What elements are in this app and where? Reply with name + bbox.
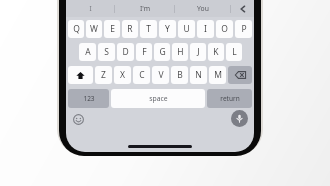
staticText: I: [204, 23, 207, 35]
button[interactable]: G: [154, 43, 170, 61]
staticText: K: [213, 46, 219, 58]
staticText: F: [142, 46, 147, 58]
button[interactable]: Q: [68, 20, 84, 38]
button[interactable]: Shift: [68, 66, 93, 84]
staticText: You: [197, 4, 209, 13]
button[interactable]: M: [209, 66, 226, 84]
button[interactable]: V: [152, 66, 169, 84]
staticText: X: [120, 69, 125, 81]
button[interactable]: return: [207, 89, 252, 108]
button[interactable]: Collapse predictions: [231, 0, 254, 17]
button[interactable]: Z: [95, 66, 112, 84]
staticText: return: [220, 94, 240, 103]
button[interactable]: C: [133, 66, 150, 84]
button[interactable]: J: [190, 43, 206, 61]
staticText: O: [221, 23, 228, 35]
button[interactable]: O: [216, 20, 233, 38]
button[interactable]: W: [86, 20, 102, 38]
button[interactable]: 123: [68, 89, 109, 108]
button[interactable]: I: [66, 0, 114, 17]
button[interactable]: I'm: [115, 0, 174, 17]
staticText: C: [139, 69, 145, 81]
button[interactable]: T: [140, 20, 157, 38]
staticText: P: [241, 23, 247, 35]
button[interactable]: N: [190, 66, 207, 84]
staticText: R: [127, 23, 133, 35]
button[interactable]: I: [197, 20, 214, 38]
staticText: Y: [165, 23, 170, 35]
button[interactable]: R: [122, 20, 138, 38]
staticText: E: [110, 23, 115, 35]
button[interactable]: D: [117, 43, 134, 61]
button[interactable]: S: [98, 43, 115, 61]
staticText: I'm: [140, 4, 150, 13]
staticText: J: [197, 46, 200, 58]
staticText: M: [214, 69, 222, 81]
button[interactable]: space: [111, 89, 205, 108]
staticText: L: [232, 46, 237, 58]
staticText: B: [177, 69, 183, 81]
staticText: G: [159, 46, 166, 58]
staticText: D: [122, 46, 129, 58]
staticText: Q: [73, 23, 80, 35]
button[interactable]: Emoji: [71, 112, 85, 126]
button[interactable]: Delete: [228, 66, 252, 84]
staticText: T: [146, 23, 151, 35]
button[interactable]: B: [171, 66, 188, 84]
staticText: V: [158, 69, 164, 81]
button[interactable]: X: [114, 66, 131, 84]
button[interactable]: U: [178, 20, 195, 38]
button[interactable]: P: [235, 20, 252, 38]
button[interactable]: E: [104, 20, 120, 38]
button[interactable]: F: [136, 43, 152, 61]
button[interactable]: Dictation: [231, 110, 248, 127]
staticText: U: [183, 23, 190, 35]
staticText: S: [104, 46, 109, 58]
button[interactable]: K: [208, 43, 224, 61]
button[interactable]: Y: [159, 20, 176, 38]
staticText: 123: [83, 94, 95, 103]
button[interactable]: L: [226, 43, 242, 61]
staticText: I: [89, 4, 92, 13]
staticText: W: [90, 23, 98, 35]
button[interactable]: A: [79, 43, 96, 61]
staticText: A: [85, 46, 91, 58]
button[interactable]: You: [175, 0, 230, 17]
staticText: H: [177, 46, 184, 58]
staticText: space: [149, 94, 168, 103]
staticText: N: [195, 69, 202, 81]
staticText: Z: [101, 69, 106, 81]
button[interactable]: H: [172, 43, 188, 61]
